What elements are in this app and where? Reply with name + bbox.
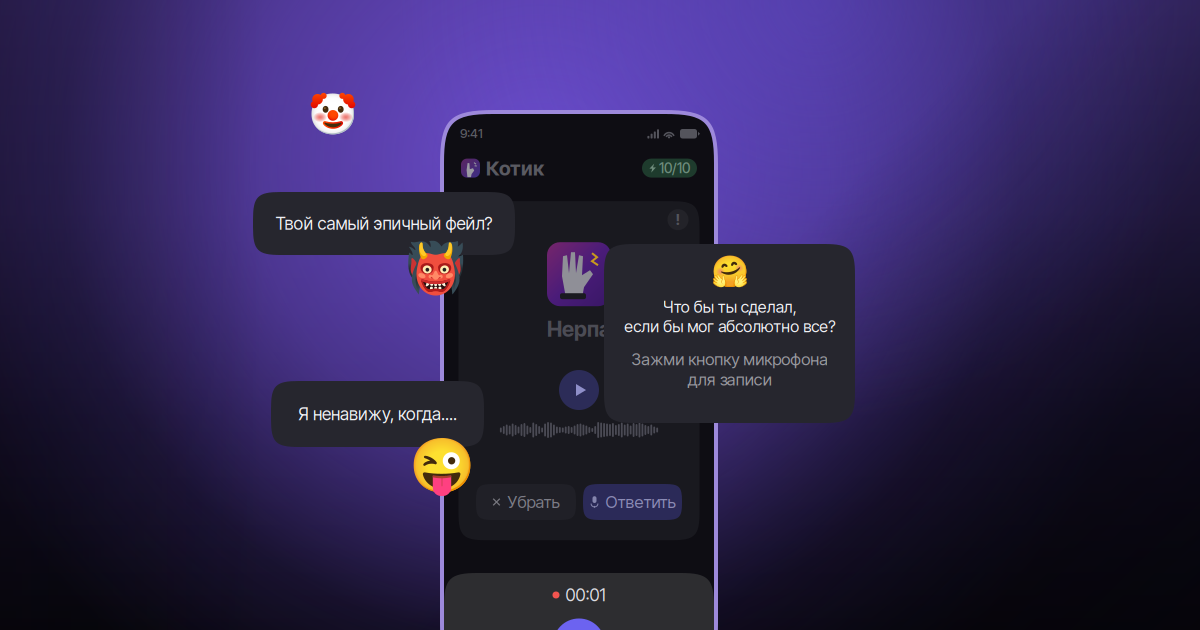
staticText: 👹 xyxy=(405,240,466,296)
staticText: Зажми кнопку микрофона для записи xyxy=(631,349,828,389)
button[interactable]: Info xyxy=(667,209,688,230)
staticText: 😜 xyxy=(409,435,475,496)
staticText: 🤗 xyxy=(710,254,748,289)
staticText: 00:01 xyxy=(565,584,605,605)
staticText: Котик xyxy=(486,156,544,180)
staticText: Ответить xyxy=(605,492,675,512)
staticText: ! xyxy=(675,211,680,228)
button[interactable]: Record xyxy=(553,618,605,630)
staticText: Твой самый эпичный фейл? xyxy=(275,213,492,234)
button[interactable]: Play xyxy=(559,370,599,410)
staticText: Что бы ты сделал, если бы мог абсолютно … xyxy=(624,297,835,336)
button[interactable]: Убрать xyxy=(476,484,576,520)
staticText: 9:41 xyxy=(460,126,483,141)
staticText: Нерпа xyxy=(547,316,611,342)
staticText: Убрать xyxy=(507,492,559,512)
button[interactable]: 10/10 xyxy=(642,159,697,178)
staticText: 10/10 xyxy=(659,160,690,176)
staticText: 🤡 xyxy=(308,91,358,137)
button[interactable]: Ответить xyxy=(583,484,682,520)
staticText: Я ненавижу, когда.... xyxy=(298,403,457,424)
